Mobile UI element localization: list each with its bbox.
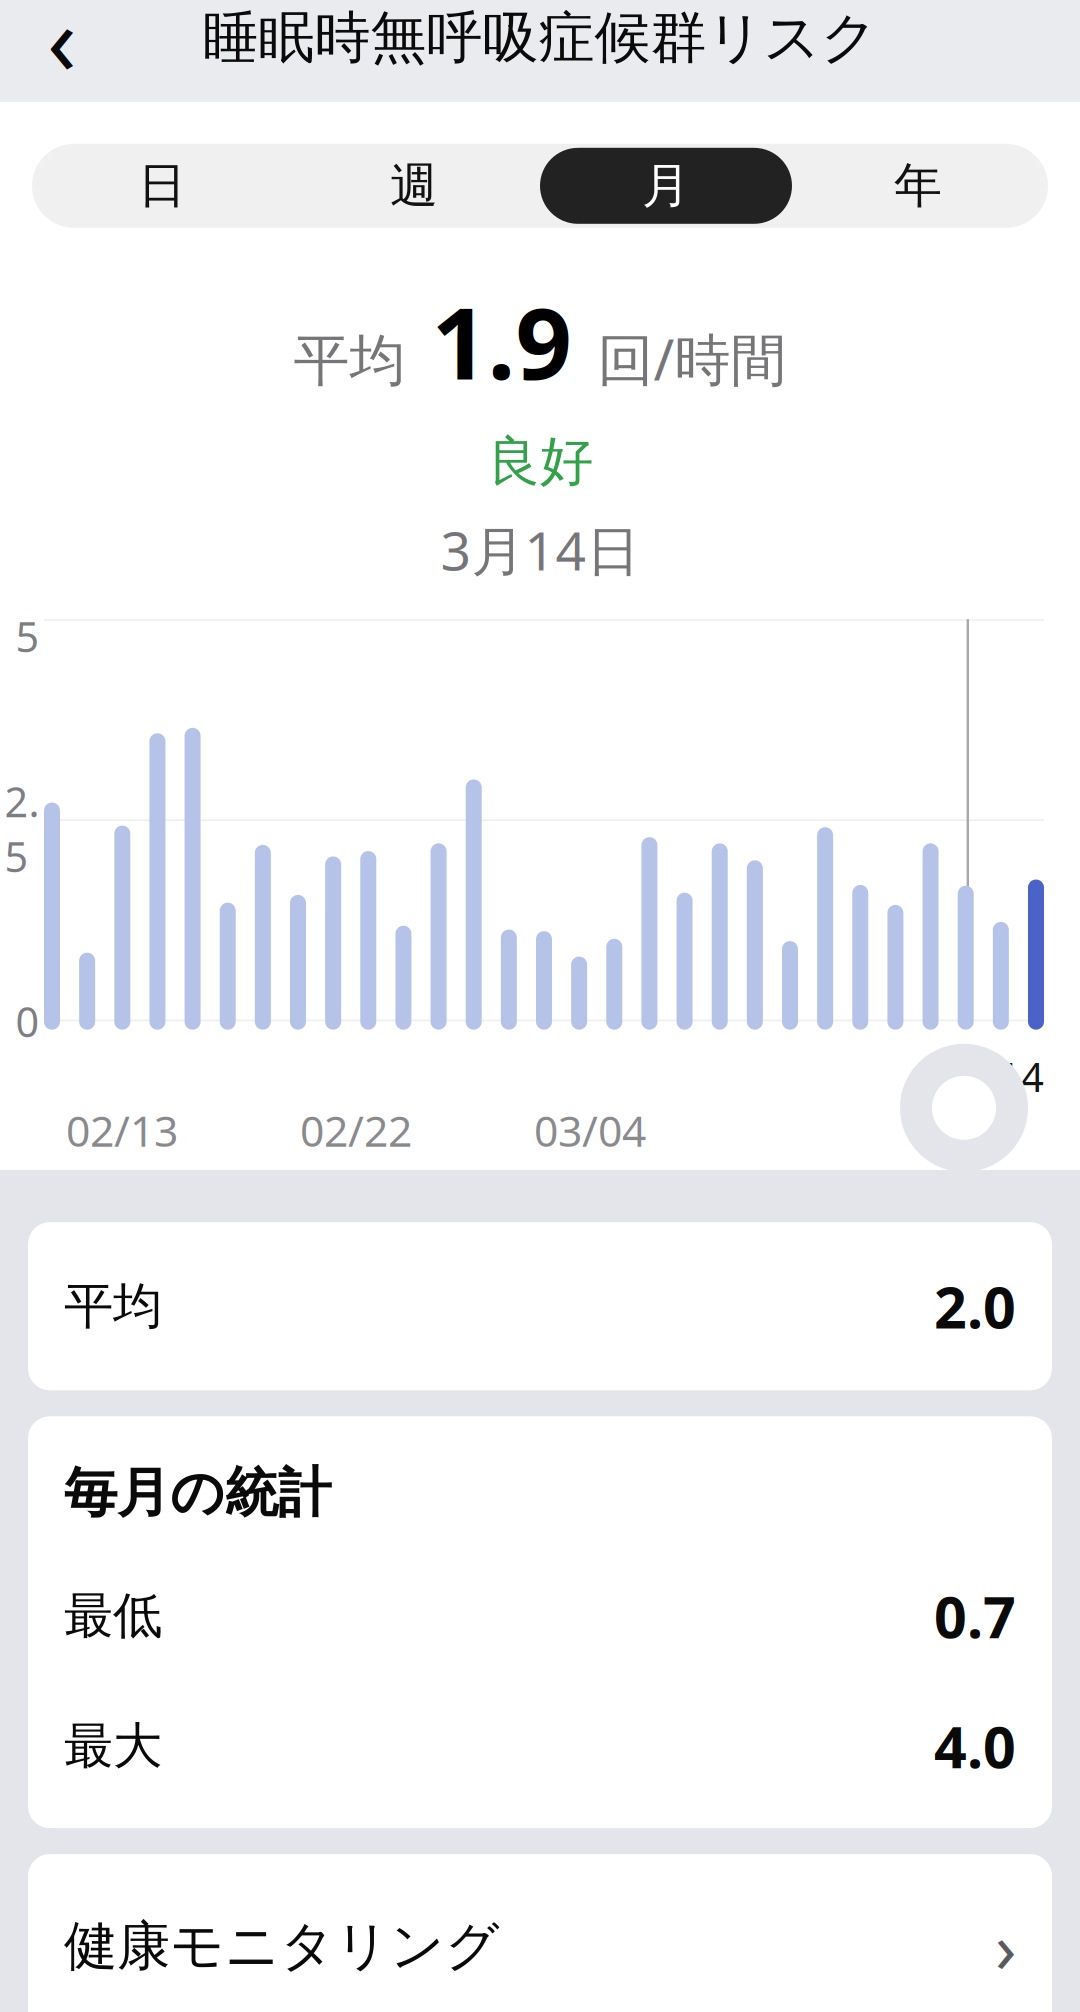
staticText: 平均 [293,327,405,395]
staticText: ‹ [47,0,77,102]
staticText: 02/13 [66,1102,178,1159]
staticText: 最低 [64,1586,162,1646]
staticText: 回/時間 [597,321,786,396]
staticText: 2.0 [934,1268,1016,1344]
staticText: 03/14 [937,1050,1044,1103]
staticText: 良好 [487,429,593,494]
button[interactable]: 週 [288,148,540,224]
staticText: › [995,1900,1016,1992]
staticText: 月 [642,156,690,215]
staticText: 健康モニタリング [64,1913,500,1979]
staticText: 週 [390,156,438,215]
staticText: 年 [894,156,942,215]
staticText: 0.7 [934,1578,1016,1654]
button[interactable]: 健康モニタリング [0,1854,1080,2012]
button[interactable]: 日 [36,148,288,224]
staticText: 0 [15,994,39,1049]
staticText: 3月14日 [440,514,639,585]
staticText: 平均 [64,1276,162,1337]
staticText: 03/04 [534,1102,646,1159]
staticText: 1.9 [405,276,597,407]
staticText: 5 [15,609,39,664]
button[interactable]: 月 [540,148,792,224]
button[interactable]: 戻る [14,0,110,86]
staticText: 日 [138,156,186,215]
staticText: 2.5 [4,774,39,884]
staticText: 最大 [64,1716,162,1776]
staticText: 毎月の統計 [64,1460,331,1526]
staticText: 02/22 [300,1102,412,1159]
staticText: 4.0 [934,1708,1016,1784]
staticText: 睡眠時無呼吸症候群リスク [202,3,877,72]
button[interactable]: 年 [792,148,1044,224]
